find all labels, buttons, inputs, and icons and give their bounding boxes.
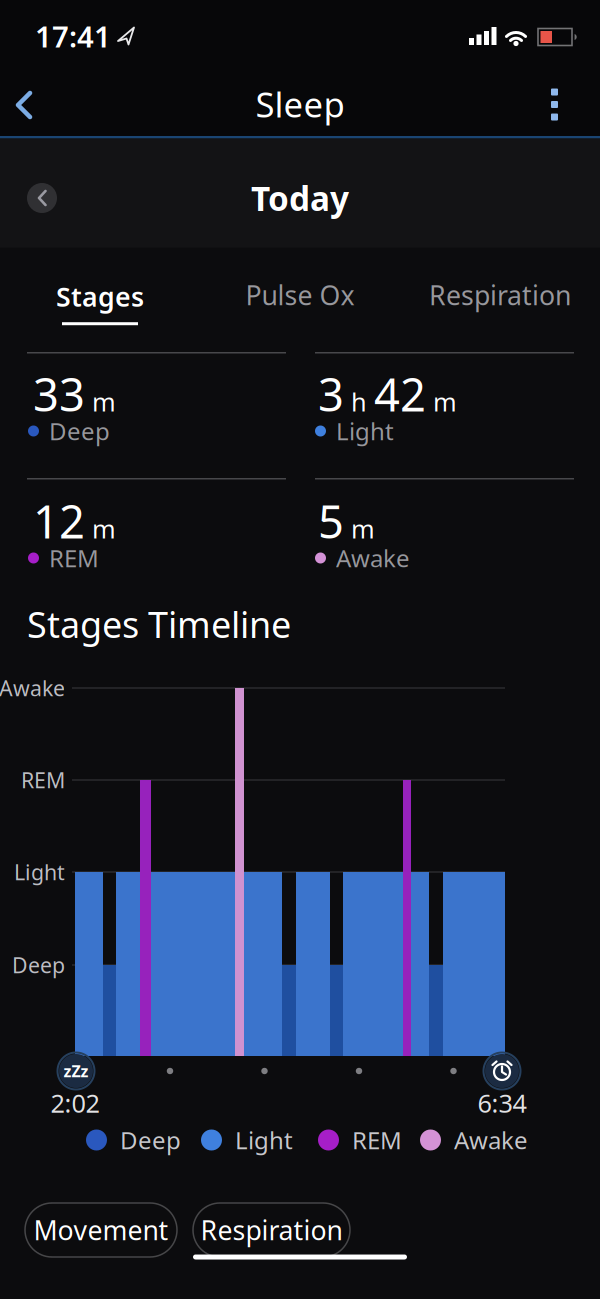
staticText: Light — [14, 858, 65, 886]
staticText: h — [351, 385, 367, 418]
staticText: Respiration — [429, 277, 571, 313]
staticText: REM — [352, 1124, 402, 1156]
staticText: Stages — [56, 279, 144, 314]
staticText: REM — [21, 766, 65, 794]
staticText: Sleep — [255, 81, 344, 127]
staticText: Awake — [0, 674, 65, 702]
button[interactable]: Pulse Ox — [245, 277, 354, 313]
staticText: Deep — [12, 951, 65, 979]
staticText: Awake — [336, 542, 410, 574]
button[interactable]: Previous day — [27, 183, 57, 213]
staticText: m — [92, 512, 116, 545]
staticText: Light — [235, 1124, 293, 1156]
button[interactable]: Stages — [56, 279, 144, 325]
staticText: 3 — [318, 364, 344, 424]
staticText: zZz — [63, 1060, 88, 1082]
staticText: Pulse Ox — [245, 277, 354, 313]
staticText: 2:02 — [50, 1086, 99, 1120]
staticText: Stages Timeline — [27, 600, 291, 648]
staticText: 17:41 — [35, 16, 111, 55]
staticText: 42 — [374, 364, 426, 424]
staticText: 5 — [318, 491, 344, 551]
staticText: REM — [49, 542, 99, 574]
staticText: Awake — [454, 1124, 528, 1156]
button[interactable]: Movement — [25, 1203, 177, 1257]
button[interactable]: Respiration — [193, 1203, 350, 1257]
staticText: Light — [336, 415, 394, 447]
button[interactable]: Respiration — [429, 277, 571, 313]
staticText: Deep — [120, 1124, 181, 1156]
staticText: m — [351, 512, 375, 545]
button[interactable]: Back — [15, 91, 33, 119]
button[interactable]: More options — [551, 88, 558, 120]
staticText: 12 — [33, 491, 85, 551]
staticText: 33 — [33, 364, 85, 424]
staticText: m — [92, 385, 116, 418]
staticText: Respiration — [200, 1212, 342, 1248]
staticText: 6:34 — [477, 1086, 526, 1120]
staticText: Movement — [33, 1212, 168, 1248]
staticText: Deep — [49, 415, 110, 447]
staticText: Today — [251, 176, 349, 220]
staticText: m — [433, 385, 457, 418]
